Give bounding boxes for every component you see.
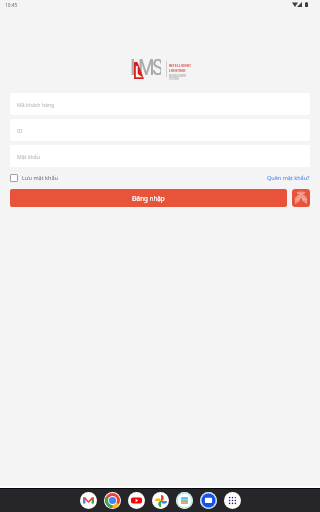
button[interactable]: App <box>104 492 121 509</box>
staticText: MS <box>138 55 161 77</box>
button[interactable]: Quên mật khẩu? <box>267 173 310 182</box>
staticText: SYSTEM <box>169 77 179 80</box>
staticText: 10:45 <box>5 2 18 9</box>
staticText: Đăng nhập <box>132 194 165 203</box>
staticText: Quên mật khẩu? <box>267 174 310 181</box>
button[interactable]: App <box>152 492 169 509</box>
staticText: LIGHTING <box>169 68 186 73</box>
button[interactable]: App <box>80 492 97 509</box>
button[interactable]: Mã khách hàng <box>10 93 310 115</box>
button[interactable]: App <box>176 492 193 509</box>
staticText: ID <box>17 127 23 134</box>
staticText: Mật khẩu <box>17 153 40 160</box>
button[interactable]: App <box>200 492 217 509</box>
staticText: INTELLIGENT <box>169 63 192 68</box>
button[interactable]: Mật khẩu <box>10 145 310 167</box>
button[interactable]: Lưu mật khẩu <box>10 173 58 182</box>
button[interactable]: Fingerprint login <box>292 189 310 207</box>
staticText: Mã khách hàng <box>17 101 55 108</box>
button[interactable]: App <box>128 492 145 509</box>
button[interactable]: Đăng nhập <box>10 189 287 207</box>
staticText: MANAGEMENT <box>169 74 187 77</box>
staticText: I <box>130 55 136 77</box>
staticText: Lưu mật khẩu <box>22 174 58 181</box>
button[interactable]: App <box>224 492 241 509</box>
